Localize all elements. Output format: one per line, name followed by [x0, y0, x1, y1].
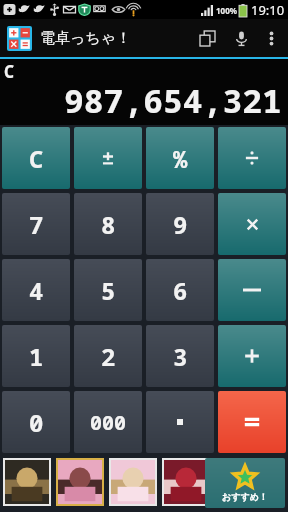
button[interactable]: C: [2, 127, 70, 189]
staticText: 電卓っちゃ！: [40, 29, 132, 48]
staticText: 5: [101, 274, 116, 307]
button[interactable]: Recommended app 4: [162, 458, 210, 506]
button[interactable]: 3: [146, 325, 214, 387]
button[interactable]: 7: [2, 193, 70, 255]
staticText: 100%: [216, 5, 237, 16]
staticText: 8: [101, 208, 116, 241]
button[interactable]: Recommended app 2: [56, 458, 104, 506]
staticText: 987,654,321: [64, 78, 282, 123]
button[interactable]: More options: [258, 19, 284, 57]
button[interactable]: %: [146, 127, 214, 189]
button[interactable]: 000: [74, 391, 142, 453]
button[interactable]: [218, 127, 286, 189]
staticText: 0: [29, 406, 44, 439]
button[interactable]: 5: [74, 259, 142, 321]
staticText: 4: [29, 274, 44, 307]
button[interactable]: 6: [146, 259, 214, 321]
button[interactable]: [218, 259, 286, 321]
staticText: 6: [173, 274, 188, 307]
staticText: 9: [173, 208, 188, 241]
staticText: C: [4, 60, 15, 83]
button[interactable]: 9: [146, 193, 214, 255]
staticText: %: [173, 142, 188, 175]
button[interactable]: おすすめ！: [205, 458, 285, 508]
button[interactable]: Recommended app 1: [3, 458, 51, 506]
staticText: 1: [29, 340, 44, 373]
button[interactable]: 0: [2, 391, 70, 453]
staticText: 2: [101, 340, 116, 373]
button[interactable]: 4: [2, 259, 70, 321]
button[interactable]: [146, 391, 214, 453]
button[interactable]: Voice input: [224, 19, 258, 57]
button[interactable]: 8: [74, 193, 142, 255]
staticText: 7: [29, 208, 44, 241]
staticText: 19:10: [251, 1, 285, 19]
staticText: 3: [173, 340, 188, 373]
button[interactable]: Recommended app 3: [109, 458, 157, 506]
button[interactable]: Recent apps: [190, 19, 224, 57]
staticText: C: [29, 142, 44, 175]
button[interactable]: [218, 193, 286, 255]
button[interactable]: [218, 325, 286, 387]
button[interactable]: 1: [2, 325, 70, 387]
staticText: おすすめ！: [222, 491, 268, 502]
button[interactable]: 2: [74, 325, 142, 387]
button[interactable]: [218, 391, 286, 453]
staticText: 000: [90, 409, 126, 436]
button[interactable]: [74, 127, 142, 189]
